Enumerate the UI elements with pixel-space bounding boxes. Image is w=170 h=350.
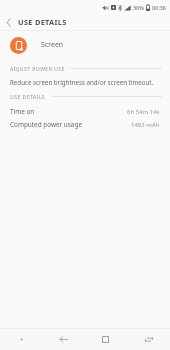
staticText: USE DETAILS (18, 17, 67, 27)
button[interactable]: Home (84, 328, 127, 350)
staticText: Time on (10, 107, 35, 116)
button[interactable]: Screen (0, 31, 170, 59)
button[interactable]: Time on (0, 107, 170, 116)
staticText: ADJUST POWER USE (10, 65, 65, 72)
staticText: Reduce screen brightness and/or screen t… (10, 78, 154, 86)
staticText: Screen (41, 40, 64, 50)
staticText: 00:36 (152, 4, 166, 11)
staticText: 6h 54m 14s (127, 108, 160, 116)
button[interactable]: Hide navigation bar (0, 328, 42, 350)
button[interactable]: Computed power usage (0, 120, 170, 129)
staticText: USE DETAILS (10, 93, 46, 100)
button[interactable]: Recent apps (127, 328, 170, 350)
staticText: Computed power usage (10, 120, 82, 129)
staticText: 1493 mAh (131, 121, 160, 129)
button[interactable]: Back (0, 14, 18, 30)
button[interactable]: Back (42, 328, 84, 350)
staticText: 30% (133, 4, 144, 11)
